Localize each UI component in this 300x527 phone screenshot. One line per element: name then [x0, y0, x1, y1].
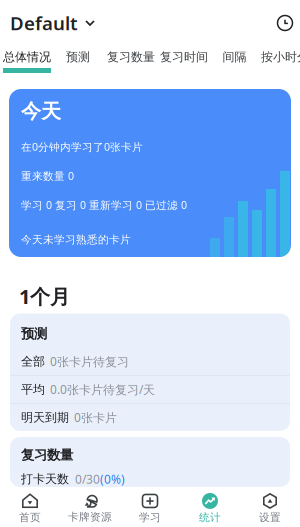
staticText: 复习时间	[160, 50, 208, 64]
staticText: 总体情况	[3, 50, 51, 64]
staticText: 学习 0 复习 0 重新学习 0 已过滤 0	[21, 198, 187, 212]
staticText: 统计	[199, 511, 221, 524]
staticText: 卡牌资源	[68, 510, 112, 523]
button[interactable]: 设置	[240, 490, 300, 527]
staticText: 平均	[21, 382, 45, 397]
staticText: 重来数量 0	[21, 169, 74, 183]
staticText: 学习	[139, 511, 161, 524]
staticText: 间隔	[223, 50, 247, 64]
staticText: 预测	[21, 326, 47, 342]
button[interactable]: 统计	[180, 490, 240, 527]
staticText: 按小时分	[261, 50, 300, 64]
staticText: 0张卡片待复习	[50, 353, 129, 369]
staticText: 0.0张卡片待复习/天	[50, 381, 155, 397]
button[interactable]: 学习	[120, 490, 180, 527]
staticText: 打卡天数	[21, 472, 69, 486]
staticText: 明天到期	[21, 410, 69, 425]
staticText: 设置	[259, 511, 281, 524]
button[interactable]: Default	[0, 3, 95, 43]
staticText: 复习数量	[21, 447, 73, 463]
staticText: 今天未学习熟悉的卡片	[21, 233, 131, 246]
staticText: 0张卡片	[74, 409, 117, 425]
button[interactable]: 预测	[54, 46, 104, 73]
staticText: 在0分钟内学习了0张卡片	[21, 140, 143, 154]
button[interactable]: 复习时间	[158, 46, 209, 73]
staticText: 今天	[21, 99, 61, 124]
staticText: (0%)	[100, 471, 125, 487]
button[interactable]: History	[277, 7, 300, 39]
staticText: 首页	[19, 511, 41, 524]
staticText: 0/30	[69, 471, 100, 487]
staticText: 1个月	[19, 283, 70, 310]
button[interactable]: 总体情况	[0, 46, 54, 73]
button[interactable]: 首页	[0, 490, 60, 527]
staticText: 预测	[66, 50, 90, 64]
button[interactable]: 卡牌资源	[60, 490, 120, 527]
button[interactable]: 按小时分	[259, 46, 300, 73]
staticText: 复习数量	[107, 50, 155, 64]
staticText: 全部	[21, 354, 45, 369]
button[interactable]: 间隔	[209, 46, 259, 73]
staticText: Default	[10, 11, 78, 35]
button[interactable]: 复习数量	[104, 46, 158, 73]
